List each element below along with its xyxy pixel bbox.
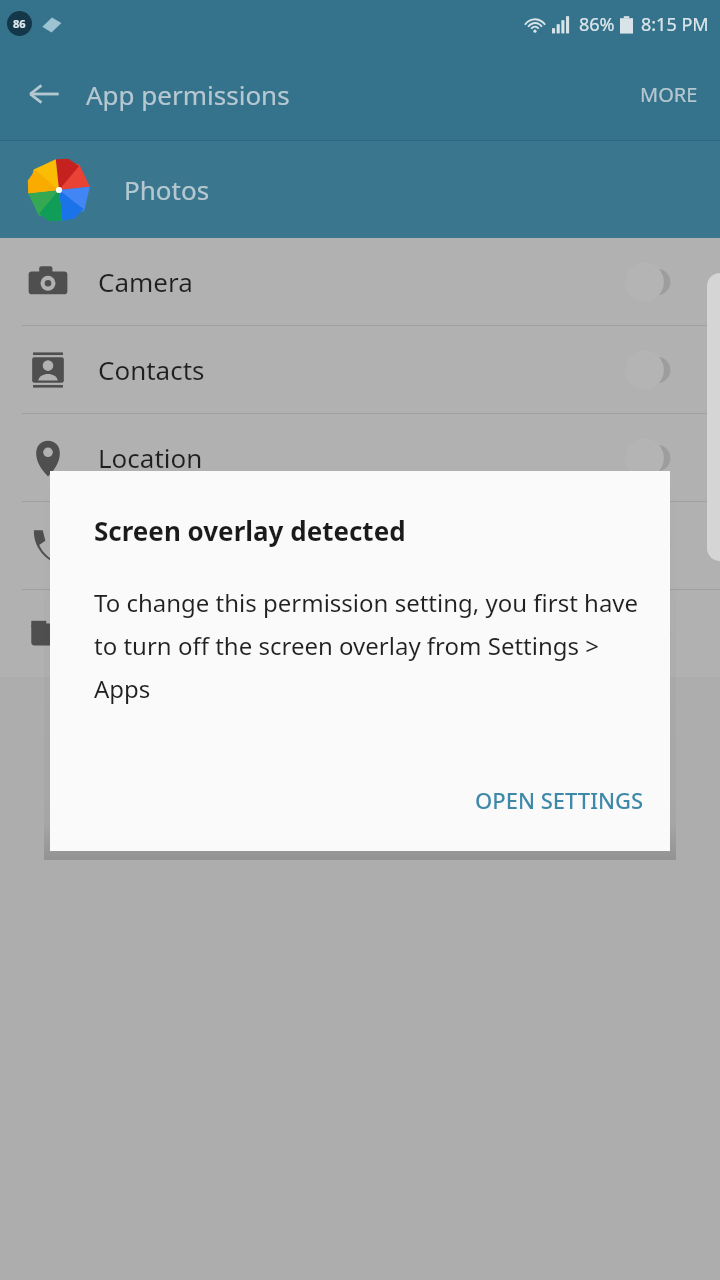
button[interactable]: Phone xyxy=(0,502,720,589)
button[interactable]: Location xyxy=(0,414,720,501)
button[interactable]: Storage xyxy=(0,590,720,677)
staticText: Storage xyxy=(98,616,620,651)
button[interactable]: Back xyxy=(16,66,72,122)
staticText: Screen overlay detected xyxy=(94,513,406,548)
staticText: 8:15 PM xyxy=(641,12,709,37)
staticText: Phone xyxy=(98,528,620,563)
staticText: MORE xyxy=(640,81,698,108)
staticText: 86 xyxy=(13,16,26,31)
staticText: Camera xyxy=(98,264,620,299)
staticText: 86% xyxy=(579,12,615,37)
button[interactable]: Camera xyxy=(0,238,720,325)
staticText: Contacts xyxy=(98,352,620,387)
staticText: App permissions xyxy=(86,77,290,112)
staticText: Location xyxy=(98,440,620,475)
button[interactable]: Contacts xyxy=(0,326,720,413)
button[interactable]: Photos xyxy=(0,141,720,238)
staticText: OPEN SETTINGS xyxy=(475,785,644,815)
staticText: Photos xyxy=(124,172,210,207)
staticText: To change this permission setting, you f… xyxy=(94,586,648,705)
button[interactable]: MORE xyxy=(630,69,708,120)
button[interactable]: OPEN SETTINGS xyxy=(449,769,670,831)
